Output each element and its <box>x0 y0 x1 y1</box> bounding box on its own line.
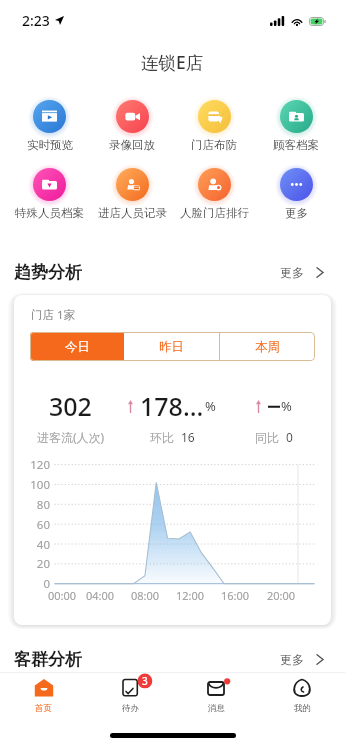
staticText: % <box>281 397 292 415</box>
staticText: 00:00 <box>46 588 78 603</box>
button[interactable]: 更多 <box>255 163 337 220</box>
staticText: 04:00 <box>84 588 116 603</box>
staticText: 昨日 <box>159 339 184 355</box>
button[interactable]: 昨日 <box>124 332 219 361</box>
staticText: 20:00 <box>265 588 297 603</box>
button[interactable]: 实时预览 <box>8 95 91 152</box>
staticText: 20 <box>18 556 50 572</box>
staticText: 连锁E店 <box>141 50 204 74</box>
staticText: 同比 <box>255 430 279 445</box>
button[interactable]: 3 <box>87 672 173 728</box>
button[interactable]: 更多 <box>280 265 324 280</box>
button[interactable]: 我的 <box>259 672 345 728</box>
button[interactable]: 录像回放 <box>91 95 173 152</box>
staticText: 趋势分析 <box>14 262 82 283</box>
button[interactable]: 门店布防 <box>173 95 255 152</box>
staticText: 今日 <box>65 339 90 355</box>
staticText: % <box>205 397 216 415</box>
staticText: 更多 <box>280 652 304 667</box>
staticText: 进店人员记录 <box>98 206 167 220</box>
staticText: 120 <box>18 457 50 473</box>
staticText: 顾客档案 <box>273 138 319 152</box>
staticText: 302 <box>49 389 92 423</box>
button[interactable]: 进店人员记录 <box>91 163 173 220</box>
staticText: 178... <box>140 389 204 423</box>
staticText: 环比 <box>150 430 174 445</box>
staticText: 特殊人员档案 <box>15 206 84 220</box>
staticText: 人脸门店排行 <box>180 206 249 220</box>
staticText: 进客流(人次) <box>37 429 105 445</box>
staticText: 更多 <box>285 206 308 220</box>
staticText: 门店 1家 <box>31 307 76 323</box>
button[interactable]: 人脸门店排行 <box>173 163 255 220</box>
staticText: 16:00 <box>219 588 251 603</box>
staticText: 我的 <box>294 703 311 714</box>
staticText: 实时预览 <box>27 138 73 152</box>
staticText: 本周 <box>255 339 280 355</box>
staticText: 0 <box>18 576 50 592</box>
staticText: 2:23 <box>22 11 50 30</box>
staticText: 12:00 <box>174 588 206 603</box>
staticText: 40 <box>18 537 50 553</box>
button[interactable]: 更多 <box>280 652 324 667</box>
button[interactable]: 消息 <box>173 672 259 728</box>
staticText: 08:00 <box>129 588 161 603</box>
button[interactable]: 顾客档案 <box>255 95 337 152</box>
button[interactable]: 本周 <box>220 332 315 361</box>
staticText: 100 <box>18 477 50 493</box>
staticText: 16 <box>181 429 195 445</box>
staticText: 更多 <box>280 265 304 280</box>
staticText: 0 <box>286 429 293 445</box>
button[interactable]: 特殊人员档案 <box>8 163 91 220</box>
staticText: 60 <box>18 517 50 533</box>
staticText: 录像回放 <box>109 138 155 152</box>
staticText: 客群分析 <box>14 649 82 670</box>
staticText: 首页 <box>35 703 52 714</box>
button[interactable]: 首页 <box>0 672 87 728</box>
staticText: 3 <box>142 674 148 688</box>
button[interactable]: 今日 <box>30 332 124 361</box>
staticText: 门店布防 <box>191 138 237 152</box>
staticText: 80 <box>18 497 50 513</box>
staticText: 待办 <box>122 703 139 714</box>
staticText: 消息 <box>208 703 225 714</box>
